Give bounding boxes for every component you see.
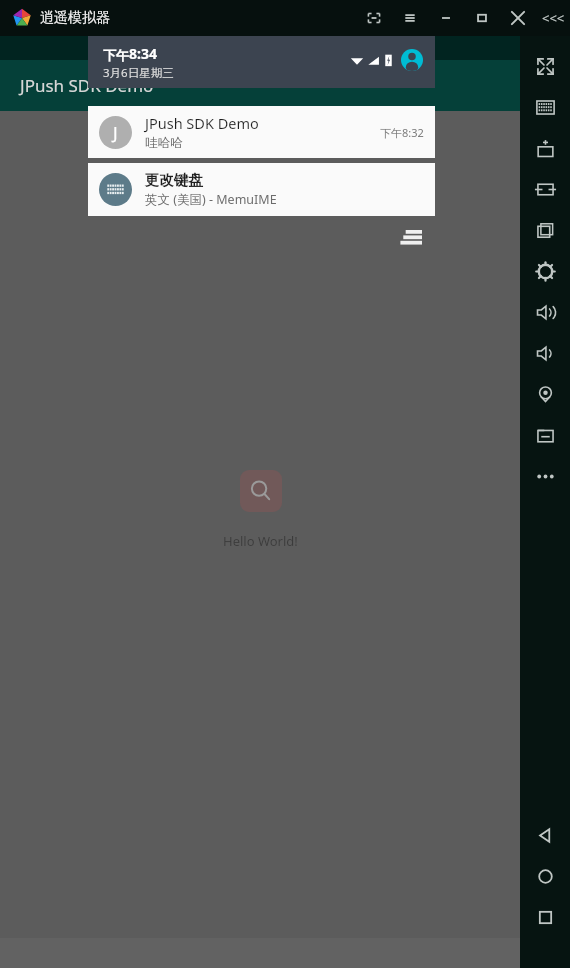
staticText: 英文 (美国) - MemuIME [145,191,277,208]
button[interactable]: Settings [520,251,570,292]
button[interactable]: More [520,456,570,497]
button[interactable]: J [88,106,435,158]
button[interactable]: Volume up [520,292,570,333]
button[interactable]: Maximize [464,0,500,36]
button[interactable]: Search [240,470,282,512]
button[interactable]: Install APK [520,128,570,169]
staticText: 逍遥模拟器 [40,9,110,27]
button[interactable]: Volume down [520,333,570,374]
staticText: 3月6日星期三 [103,65,174,81]
staticText: 更改键盘 [145,171,203,189]
button[interactable]: Location [520,374,570,415]
staticText: J [113,121,118,144]
button[interactable]: Home [520,856,570,897]
button[interactable]: Fullscreen [520,46,570,87]
button[interactable]: Clear all notifications [393,222,427,256]
staticText: 8:34 [129,44,157,63]
staticText: <<< [542,9,565,27]
staticText: 下午8:32 [380,125,424,140]
button[interactable]: Menu [392,0,428,36]
button[interactable]: Multi instance [520,210,570,251]
button[interactable]: Screenshot [356,0,392,36]
button[interactable]: 更改键盘 [88,163,435,216]
button[interactable]: Collapse [536,0,570,36]
staticText: 哇哈哈 [145,135,183,151]
button[interactable]: Back [520,815,570,856]
button[interactable]: Close [500,0,536,36]
staticText: Hello World! [223,532,298,550]
button[interactable]: Transfer file [520,169,570,210]
staticText: 下午 [103,47,129,63]
button[interactable]: Shared folder [520,415,570,456]
button[interactable]: Keyboard [520,87,570,128]
button[interactable]: Minimize [428,0,464,36]
staticText: JPush SDK Demo [145,113,259,133]
button[interactable]: Recents [520,897,570,938]
staticText: JPush SDK Demo [20,74,154,97]
button[interactable]: User [401,49,423,71]
